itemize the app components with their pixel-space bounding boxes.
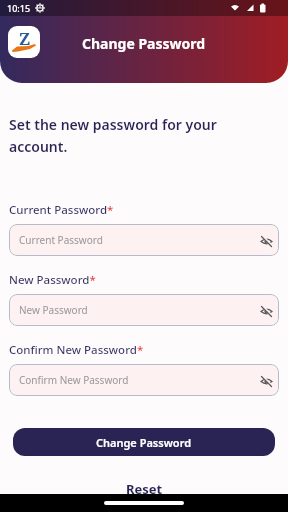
staticText: New Password [19, 303, 88, 317]
staticText: Reset [126, 480, 163, 498]
staticText: Confirm New Password [19, 373, 129, 387]
button[interactable]: Change Password [13, 428, 275, 456]
button[interactable]: Current Password [9, 224, 279, 256]
staticText: New Password* [9, 272, 96, 288]
staticText: Confirm New Password* [9, 342, 144, 358]
staticText: 10:15 [7, 2, 31, 14]
staticText: Current Password [19, 233, 103, 247]
staticText: Set the new password for your account. [9, 115, 217, 156]
button[interactable]: Confirm New Password [9, 364, 279, 396]
staticText: Change Password [96, 435, 192, 450]
staticText: Current Password* [9, 202, 114, 218]
staticText: Z [19, 27, 31, 50]
button[interactable]: New Password [9, 294, 279, 326]
button[interactable]: Reset [126, 480, 163, 498]
staticText: Change Password [82, 34, 206, 53]
